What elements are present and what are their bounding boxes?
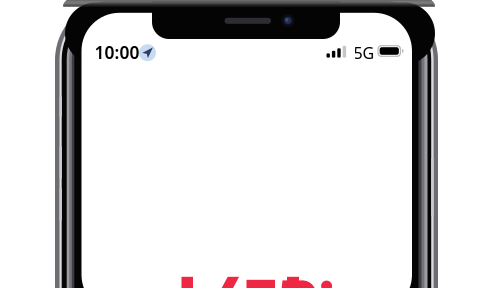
staticText: 5G [353, 42, 374, 63]
staticText: 10:00 [94, 41, 139, 64]
